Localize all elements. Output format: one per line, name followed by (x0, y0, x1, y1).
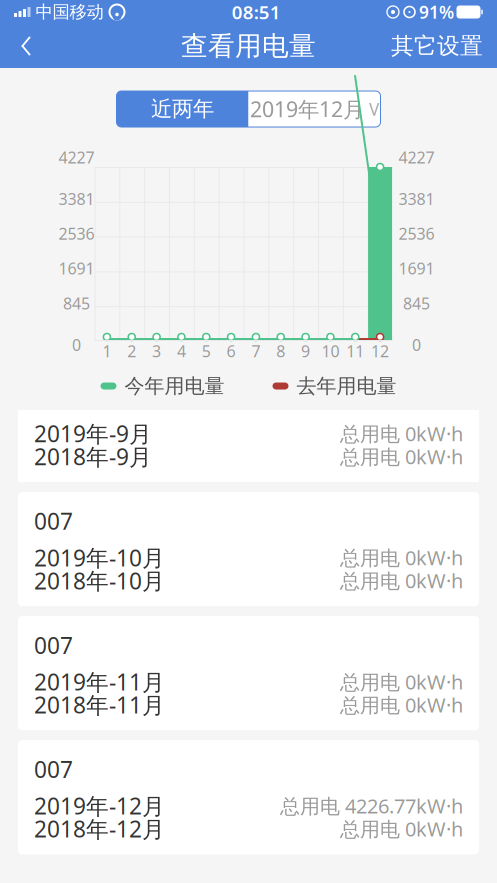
staticText: 1691 (58, 258, 94, 279)
staticText: 7 (251, 340, 260, 362)
staticText: 08:51 (232, 0, 281, 24)
button[interactable]: 007 (18, 740, 479, 854)
staticText: 007 (34, 506, 73, 536)
button[interactable]: 近两年 (116, 91, 248, 127)
staticText: 12 (371, 340, 389, 362)
staticText: 2019年12月 (250, 95, 364, 123)
staticText: 4227 (398, 147, 434, 168)
staticText: 11 (346, 340, 364, 362)
staticText: 2 (127, 340, 136, 362)
button[interactable]: Back (0, 24, 52, 68)
button[interactable]: 007 (18, 492, 479, 606)
staticText: 2018年-11月 (34, 690, 165, 720)
staticText: 0 (412, 334, 421, 355)
staticText: 8 (276, 340, 285, 362)
staticText: 2019年-10月 (34, 543, 165, 573)
staticText: V (369, 97, 379, 120)
staticText: 2536 (398, 223, 434, 244)
staticText: 2018年-12月 (34, 814, 165, 844)
staticText: 007 (34, 754, 73, 784)
staticText: 中国移动 (35, 1, 103, 23)
staticText: 845 (63, 293, 90, 314)
staticText: 0 (72, 334, 81, 355)
staticText: 总用电 0kW·h (340, 443, 463, 470)
staticText: 总用电 0kW·h (340, 420, 463, 447)
staticText: 91% (419, 0, 454, 23)
staticText: 10 (321, 340, 339, 362)
button[interactable]: 2019年-9月 (18, 410, 479, 482)
staticText: 2018年-9月 (34, 441, 152, 471)
staticText: 近两年 (151, 96, 214, 122)
staticText: 总用电 4226.77kW·h (280, 792, 463, 819)
button[interactable]: 007 (18, 616, 479, 730)
staticText: 2019年-11月 (34, 667, 165, 697)
staticText: 总用电 0kW·h (340, 691, 463, 718)
staticText: 今年用电量 (124, 374, 224, 398)
staticText: 其它设置 (391, 32, 483, 60)
staticText: 1 (102, 340, 111, 362)
staticText: 9 (301, 340, 310, 362)
button[interactable]: 其它设置 (377, 24, 497, 68)
staticText: 总用电 0kW·h (340, 567, 463, 594)
staticText: 3381 (398, 188, 434, 209)
staticText: 2536 (58, 223, 94, 244)
staticText: 6 (227, 340, 236, 362)
staticText: 总用电 0kW·h (340, 815, 463, 842)
staticText: 007 (34, 630, 73, 660)
staticText: 2018年-10月 (34, 566, 165, 596)
staticText: 总用电 0kW·h (340, 668, 463, 695)
staticText: 2019年-9月 (34, 418, 152, 448)
staticText: 2019年-12月 (34, 791, 165, 821)
staticText: 845 (403, 293, 430, 314)
staticText: 5 (202, 340, 211, 362)
staticText: 查看用电量 (181, 30, 316, 62)
staticText: 总用电 0kW·h (340, 544, 463, 571)
button[interactable]: 2019年12月 (248, 91, 380, 127)
staticText: 去年用电量 (296, 374, 396, 398)
staticText: 4227 (58, 147, 94, 168)
staticText: 4 (177, 340, 186, 362)
staticText: 3 (152, 340, 161, 362)
staticText: 3381 (58, 188, 94, 209)
staticText: 1691 (398, 258, 434, 279)
